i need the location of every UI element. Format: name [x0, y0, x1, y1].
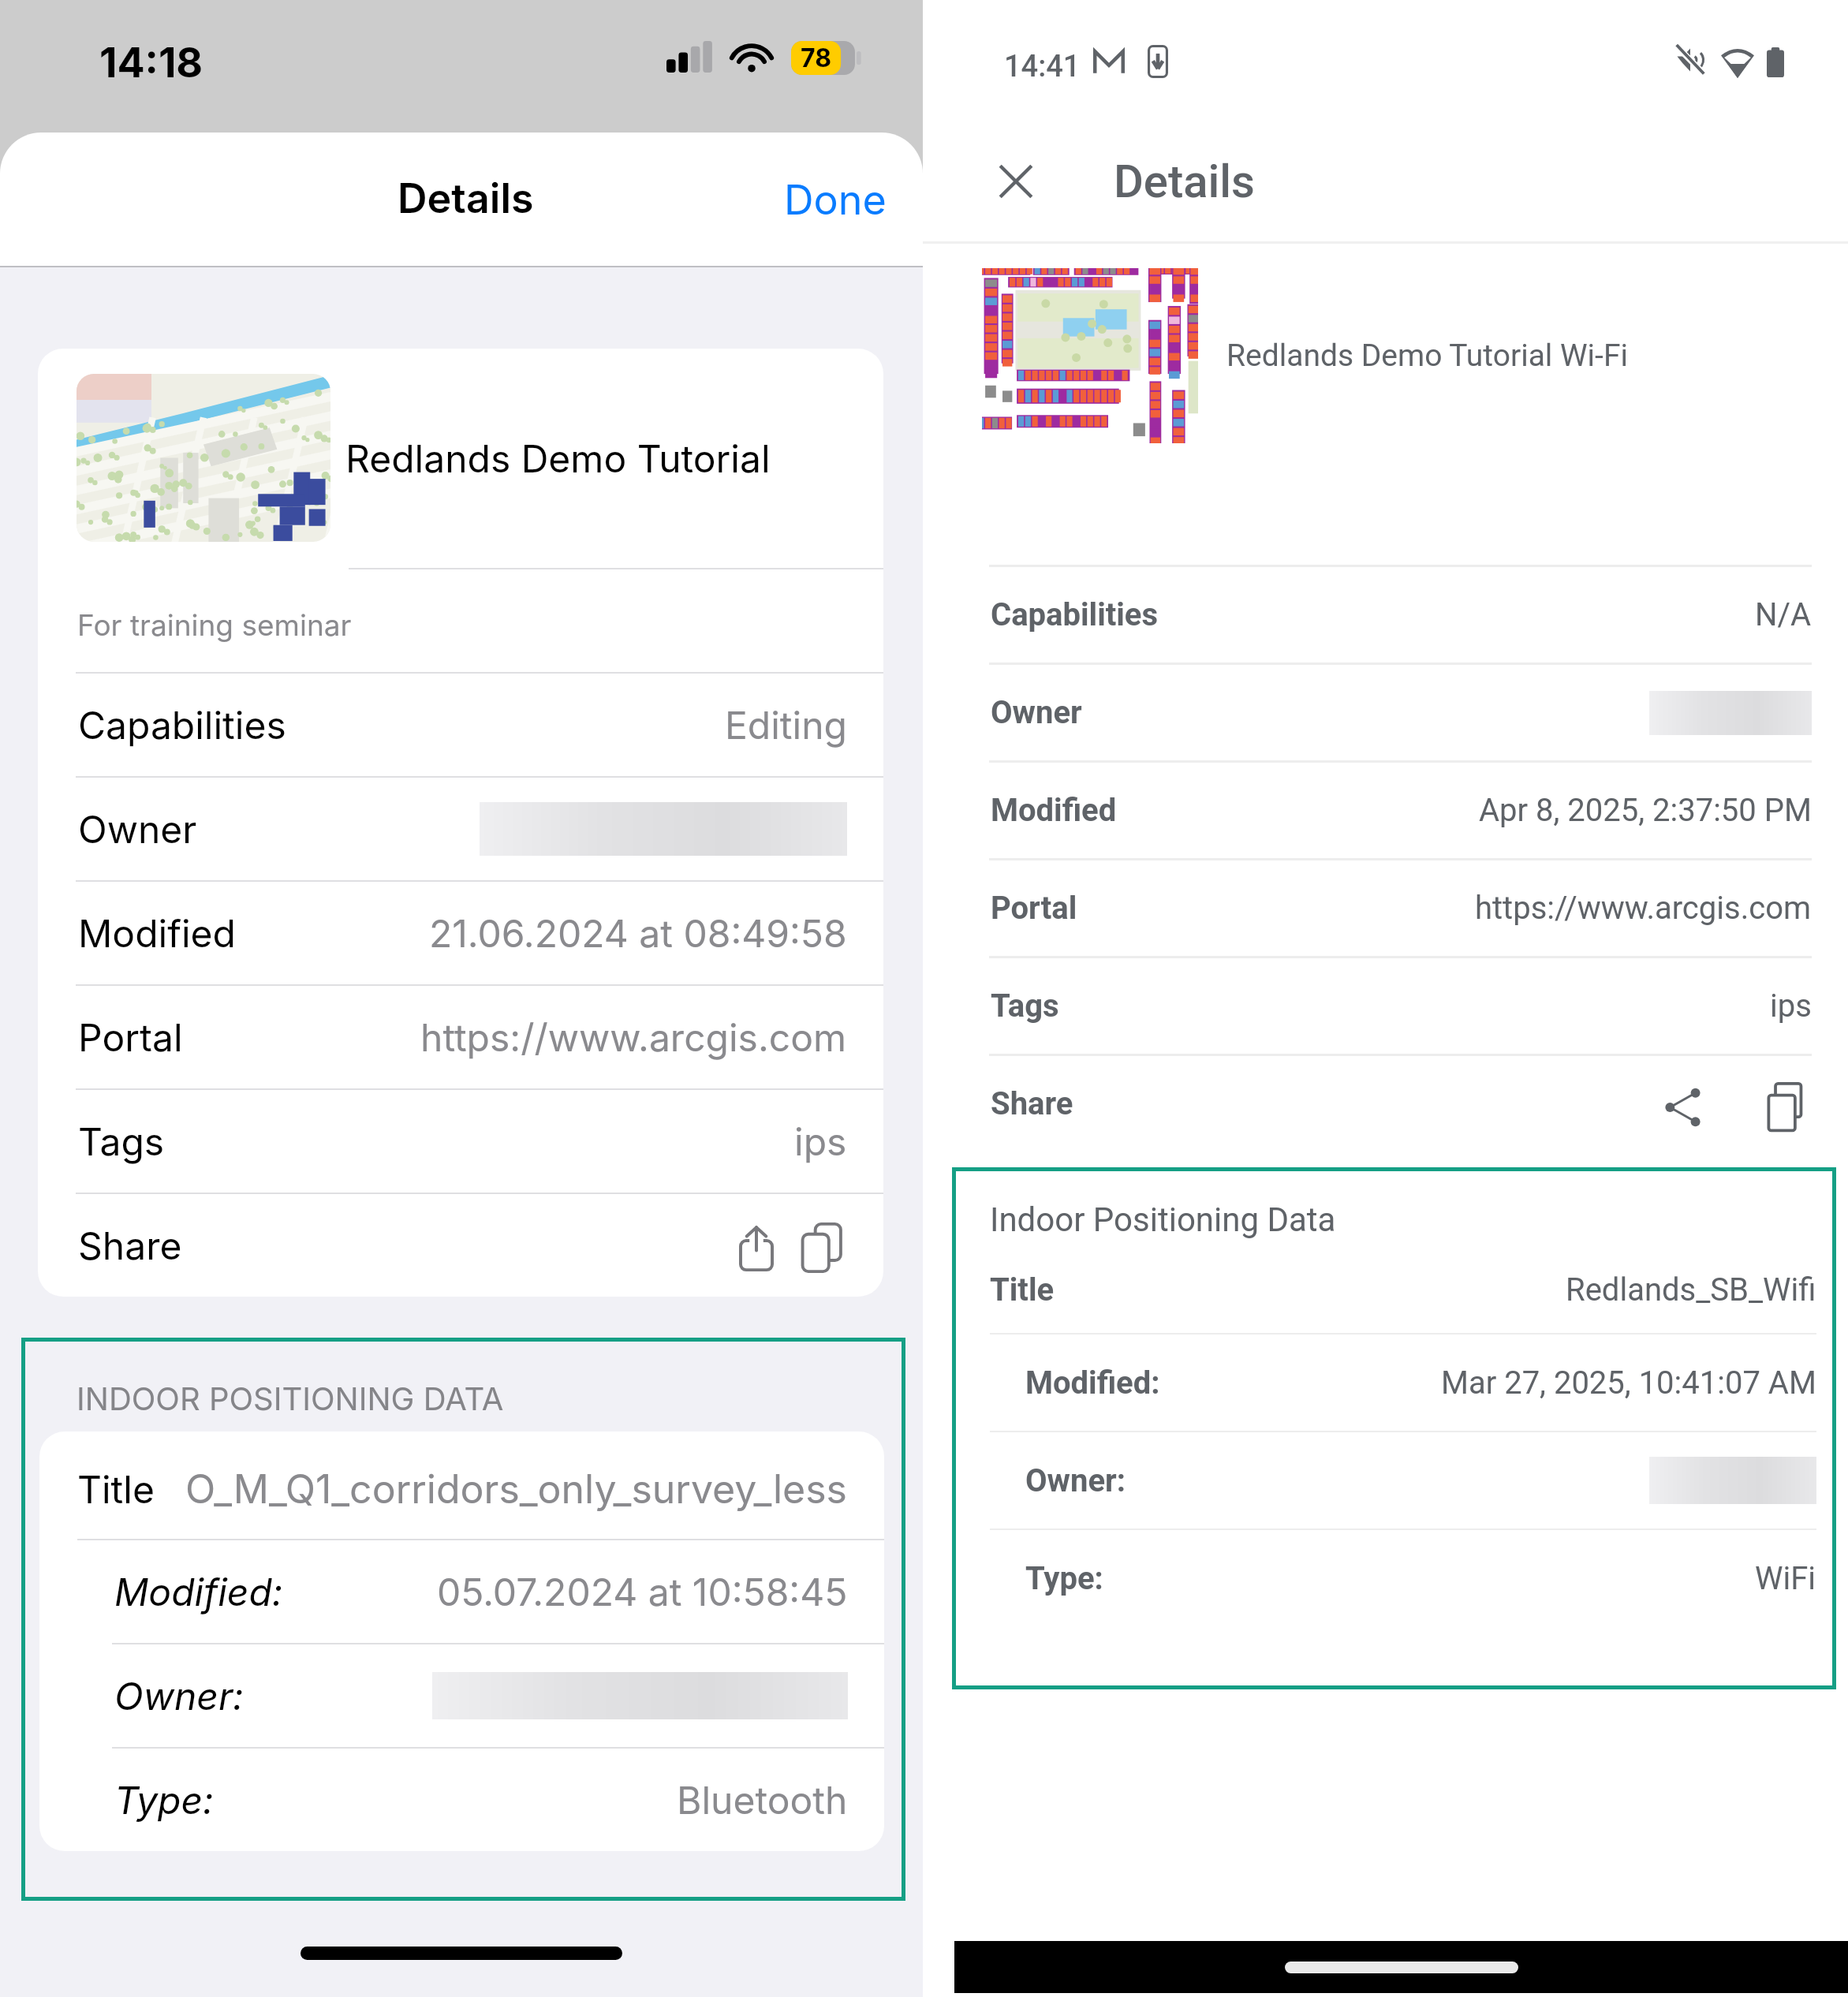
- staticText: Share: [991, 1085, 1073, 1122]
- staticText: Owner:: [1025, 1462, 1126, 1499]
- staticText: Modified: [991, 792, 1117, 829]
- staticText: ips: [794, 1118, 847, 1164]
- staticText: 14:18: [99, 38, 203, 88]
- button[interactable]: Owner: [38, 778, 883, 880]
- staticText: Capabilities: [78, 702, 286, 748]
- button[interactable]: Capabilities: [923, 567, 1848, 663]
- button[interactable]: Done: [784, 175, 887, 225]
- staticText: Indoor Positioning Data: [990, 1200, 1336, 1239]
- staticText: Portal: [991, 890, 1077, 927]
- staticText: Tags: [78, 1118, 165, 1164]
- button[interactable]: Tags: [38, 1090, 883, 1193]
- button[interactable]: Title: [990, 1246, 1816, 1333]
- button[interactable]: Close: [980, 146, 1051, 217]
- staticText: Type:: [114, 1777, 214, 1823]
- button[interactable]: Modified:: [39, 1540, 884, 1643]
- button[interactable]: Share: [923, 1056, 1848, 1152]
- button[interactable]: Type:: [990, 1530, 1816, 1626]
- staticText: Redlands Demo Tutorial Wi-Fi: [1226, 338, 1628, 374]
- staticText: Redlands_SB_Wifi: [1566, 1271, 1816, 1308]
- staticText: 78: [801, 43, 831, 73]
- staticText: Tags: [991, 987, 1059, 1025]
- button[interactable]: Portal: [923, 860, 1848, 956]
- staticText: Type:: [1025, 1560, 1103, 1597]
- staticText: Bluetooth: [677, 1777, 848, 1823]
- button[interactable]: Modified: [923, 763, 1848, 858]
- staticText: Details: [1114, 155, 1255, 208]
- staticText: ips: [1770, 987, 1812, 1025]
- button[interactable]: Type:: [39, 1749, 884, 1851]
- button[interactable]: Modified: [38, 882, 883, 984]
- staticText: WiFi: [1755, 1560, 1816, 1597]
- button[interactable]: Share: [725, 1208, 788, 1287]
- staticText: Editing: [725, 702, 847, 748]
- staticText: Owner: [991, 694, 1082, 731]
- staticText: Share: [78, 1222, 182, 1268]
- button[interactable]: Portal: [38, 986, 883, 1088]
- staticText: 14:41: [1004, 49, 1081, 84]
- staticText: O_M_Q1_corridors_only_survey_less: [185, 1465, 847, 1513]
- staticText: https://www.arcgis.com: [1475, 890, 1812, 927]
- staticText: 05.07.2024 at 10:58:45: [437, 1569, 848, 1614]
- staticText: Title: [990, 1271, 1055, 1308]
- button[interactable]: Owner:: [39, 1644, 884, 1747]
- button[interactable]: Share: [1649, 1073, 1717, 1141]
- button[interactable]: Copy: [789, 1208, 855, 1287]
- staticText: Redlands Demo Tutorial: [345, 435, 771, 481]
- staticText: N/A: [1755, 596, 1812, 633]
- staticText: Modified:: [114, 1569, 283, 1614]
- staticText: 21.06.2024 at 08:49:58: [429, 910, 847, 956]
- button[interactable]: Copy: [1752, 1073, 1820, 1141]
- button[interactable]: Owner: [923, 665, 1848, 760]
- button[interactable]: Owner:: [990, 1432, 1816, 1529]
- staticText: https://www.arcgis.com: [420, 1014, 847, 1060]
- button[interactable]: Capabilities: [38, 674, 883, 776]
- button[interactable]: Modified:: [990, 1334, 1816, 1431]
- staticText: Mar 27, 2025, 10:41:07 AM: [1441, 1364, 1816, 1402]
- button[interactable]: Share: [38, 1194, 883, 1297]
- staticText: INDOOR POSITIONING DATA: [77, 1379, 504, 1417]
- staticText: Portal: [78, 1014, 183, 1060]
- button[interactable]: Tags: [923, 958, 1848, 1054]
- staticText: Done: [784, 175, 887, 225]
- staticText: Apr 8, 2025, 2:37:50 PM: [1479, 792, 1812, 829]
- staticText: Modified: [78, 910, 236, 956]
- staticText: Modified:: [1025, 1364, 1160, 1402]
- staticText: Owner: [78, 806, 197, 852]
- staticText: Capabilities: [991, 596, 1159, 633]
- staticText: For training seminar: [77, 607, 352, 643]
- staticText: Details: [398, 174, 534, 223]
- staticText: Title: [77, 1466, 155, 1512]
- staticText: Owner:: [114, 1673, 244, 1719]
